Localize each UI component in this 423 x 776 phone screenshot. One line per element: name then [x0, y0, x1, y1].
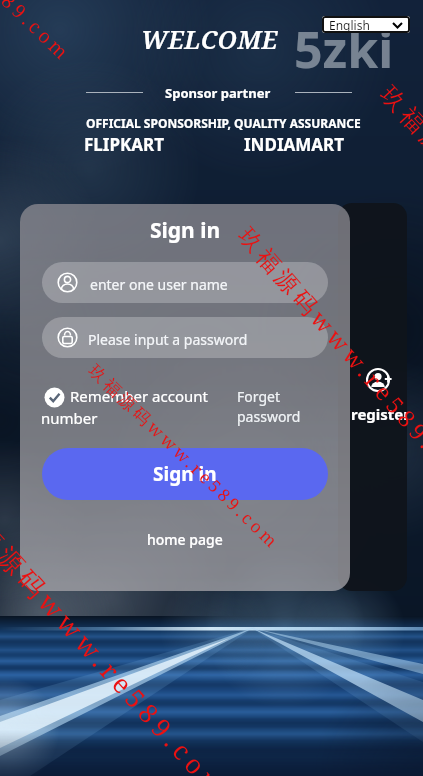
- staticText: enter one user name: [90, 275, 228, 294]
- staticText: Sign in: [153, 461, 217, 487]
- staticText: WELCOME: [141, 22, 278, 56]
- button[interactable]: Sign in: [42, 448, 328, 500]
- button[interactable]: Forget: [237, 387, 317, 429]
- staticText: home page: [147, 530, 223, 549]
- staticText: FLIPKART: [84, 133, 165, 156]
- staticText: Please input a password: [88, 330, 248, 349]
- button[interactable]: home page: [128, 524, 242, 554]
- staticText: 5zki: [294, 15, 394, 83]
- button[interactable]: register: [338, 203, 407, 591]
- staticText: 玖福源码www.re589.com: [0, 492, 237, 776]
- staticText: password: [237, 407, 301, 426]
- staticText: 89.com: [0, 0, 77, 68]
- staticText: Sign in: [150, 216, 221, 245]
- staticText: number: [41, 408, 98, 428]
- staticText: English: [329, 17, 370, 33]
- button[interactable]: Remember account: [41, 384, 241, 430]
- staticText: Forget: [237, 387, 280, 406]
- staticText: 玖福源码www.re589.com: [374, 78, 423, 366]
- staticText: 玖福源码www.re589.com: [84, 359, 285, 554]
- staticText: OFFICIAL SPONSORSHIP, QUALITY ASSURANCE: [86, 115, 361, 131]
- staticText: INDIAMART: [244, 133, 345, 156]
- button[interactable]: English: [322, 16, 410, 33]
- button[interactable]: enter one user name: [42, 262, 328, 303]
- staticText: 玖福源码www.re589.com: [233, 220, 423, 503]
- staticText: Sponsor partner: [165, 84, 271, 102]
- staticText: Remember account: [70, 386, 208, 406]
- staticText: register: [351, 404, 407, 424]
- button[interactable]: Please input a password: [42, 317, 328, 358]
